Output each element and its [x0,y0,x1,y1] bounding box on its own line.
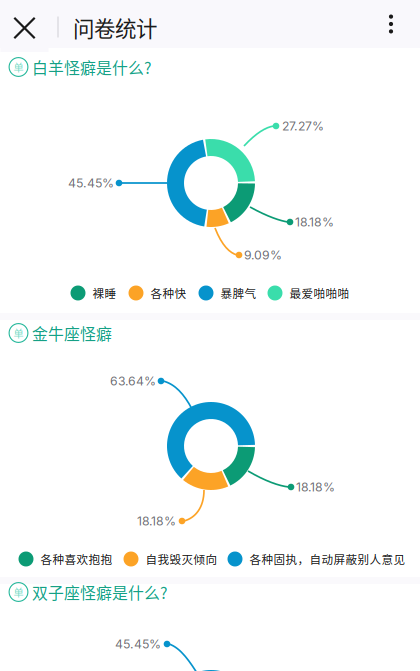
staticText: 最爱啪啪啪 [289,285,349,301]
staticText: 双子座怪癖是什么? [32,580,168,603]
staticText: 27.27% [282,119,324,133]
staticText: 18.18% [137,514,176,528]
staticText: 问卷统计 [73,12,157,43]
staticText: 金牛座怪癖 [32,321,112,344]
staticText: 各种快 [150,285,186,301]
staticText: 裸睡 [92,285,116,301]
staticText: 白羊怪癖是什么? [32,55,152,78]
staticText: 暴脾气 [220,285,256,301]
staticText: 各种喜欢抱抱 [40,551,112,567]
button[interactable]: More [369,0,413,48]
staticText: 9.09% [244,248,282,262]
staticText: 45.45% [115,637,161,651]
staticText: 单 [13,326,23,340]
staticText: 各种固执，自动屏蔽别人意见 [249,551,405,567]
staticText: 单 [13,60,23,74]
staticText: 45.45% [68,176,114,190]
staticText: 18.18% [295,215,334,229]
staticText: 自我毁灭倾向 [145,551,217,567]
staticText: 18.18% [296,480,335,494]
staticText: 63.64% [110,374,156,388]
staticText: 单 [13,585,23,599]
button[interactable]: Close [0,4,48,52]
